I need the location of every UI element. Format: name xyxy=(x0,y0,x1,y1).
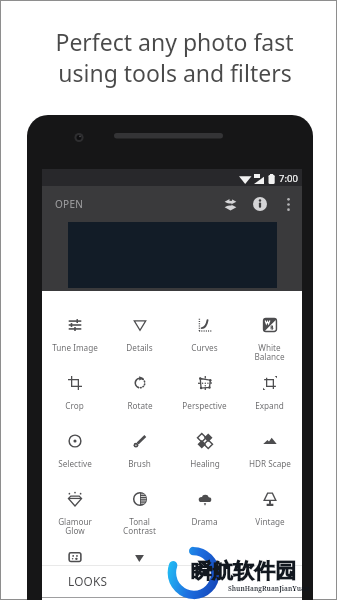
staticText: Glamour Glow xyxy=(58,516,92,537)
button[interactable]: Perspective xyxy=(172,349,237,407)
button[interactable]: Info xyxy=(245,189,275,219)
button[interactable]: Curves xyxy=(172,291,237,349)
staticText: 7:00 xyxy=(279,172,298,185)
button[interactable]: Expand xyxy=(237,349,302,407)
button[interactable]: Brush xyxy=(107,407,172,465)
staticText: LOOKS xyxy=(68,573,108,589)
staticText: Brush xyxy=(128,458,151,469)
button[interactable]: HDR Scape xyxy=(237,407,302,465)
staticText: Details xyxy=(126,342,153,353)
staticText: Selective xyxy=(58,458,92,469)
button[interactable]: Vintage xyxy=(237,465,302,523)
button[interactable]: Grainy Film xyxy=(42,523,107,581)
staticText: White Balance xyxy=(254,342,285,363)
button[interactable]: Healing xyxy=(172,407,237,465)
button[interactable]: Drama xyxy=(172,465,237,523)
button[interactable]: Tonal Contrast xyxy=(107,465,172,523)
button[interactable]: More options xyxy=(275,191,301,217)
button[interactable]: Selective xyxy=(42,407,107,465)
button[interactable]: White Balance xyxy=(237,291,302,349)
button[interactable]: Retrolux xyxy=(107,523,172,581)
button[interactable]: Stacks xyxy=(215,189,245,219)
button[interactable]: Tune Image xyxy=(42,291,107,349)
staticText: Perfect any photo fast xyxy=(55,26,294,57)
staticText: using tools and filters xyxy=(58,57,292,88)
staticText: 瞬航软件园 xyxy=(191,558,296,584)
staticText: Expand xyxy=(255,400,284,411)
button[interactable]: Rotate xyxy=(107,349,172,407)
staticText: Rotate xyxy=(127,400,153,411)
staticText: Tonal Contrast xyxy=(123,516,156,537)
staticText: Crop xyxy=(65,400,84,411)
staticText: Healing xyxy=(190,458,220,469)
staticText: Drama xyxy=(191,516,218,527)
button[interactable]: Glamour Glow xyxy=(42,465,107,523)
staticText: Vintage xyxy=(255,516,285,527)
staticText: Tune Image xyxy=(52,342,98,353)
staticText: OPEN xyxy=(55,197,84,211)
button[interactable]: LOOKS xyxy=(42,566,302,596)
staticText: Perspective xyxy=(182,400,227,411)
staticText: HDR Scape xyxy=(249,458,291,469)
staticText: Curves xyxy=(191,342,218,353)
button[interactable]: OPEN xyxy=(42,189,94,219)
staticText: ShunHangRuanJianYuan xyxy=(228,584,310,593)
button[interactable]: Details xyxy=(107,291,172,349)
button[interactable]: Crop xyxy=(42,349,107,407)
